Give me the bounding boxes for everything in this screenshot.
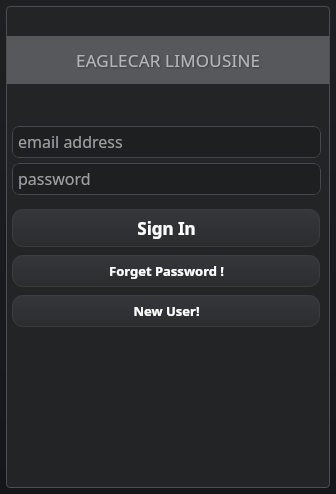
button[interactable]: Forget Password ! (12, 255, 320, 287)
staticText: New User! (133, 302, 200, 320)
button[interactable]: password (12, 163, 321, 195)
staticText: Sign In (137, 217, 196, 240)
staticText: email address (18, 131, 123, 153)
button[interactable]: Sign In (12, 209, 320, 247)
staticText: Forget Password ! (109, 262, 224, 280)
button[interactable]: New User! (12, 295, 320, 327)
staticText: password (18, 168, 91, 190)
button[interactable]: email address (12, 126, 321, 158)
staticText: EAGLECAR LIMOUSINE (76, 49, 261, 72)
